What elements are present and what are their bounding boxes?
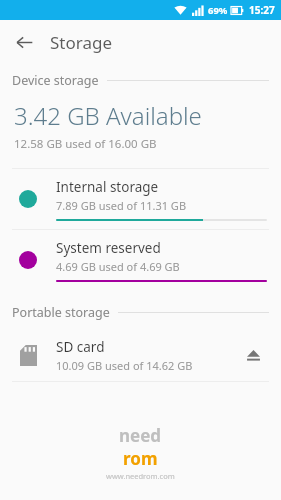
staticText: Storage — [50, 31, 113, 54]
button[interactable]: Eject SD card — [235, 337, 271, 373]
staticText: Internal storage — [56, 178, 159, 196]
staticText: System reserved — [56, 239, 161, 257]
staticText: 4.69 GB used of 4.69 GB — [56, 259, 180, 274]
button[interactable]: Internal storage — [0, 169, 281, 229]
staticText: 69% — [208, 4, 228, 17]
staticText: rom — [123, 447, 158, 470]
button[interactable]: Back — [8, 26, 40, 58]
staticText: www.needrom.com — [106, 471, 175, 481]
staticText: need — [119, 424, 162, 447]
staticText: Portable storage — [12, 304, 110, 321]
staticText: Device storage — [12, 72, 99, 89]
staticText: 15:27 — [249, 3, 275, 17]
staticText: 10.09 GB used of 14.62 GB — [56, 358, 193, 373]
staticText: SD card — [56, 338, 105, 356]
staticText: 3.42 GB Available — [14, 99, 202, 132]
button[interactable]: SD card — [0, 329, 281, 381]
button[interactable]: System reserved — [0, 230, 281, 290]
staticText: 7.89 GB used of 11.31 GB — [56, 198, 187, 213]
staticText: 12.58 GB used of 16.00 GB — [14, 136, 157, 152]
